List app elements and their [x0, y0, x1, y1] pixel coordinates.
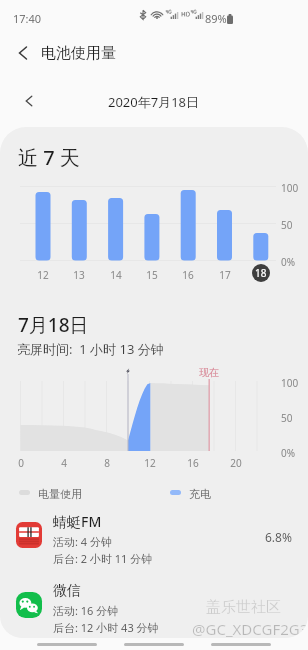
staticText: 12 [37, 268, 49, 282]
staticText: 17 [219, 268, 231, 282]
staticText: 6.8% [265, 529, 292, 545]
staticText: 14 [110, 268, 122, 282]
staticText: 17:40 [13, 11, 42, 26]
staticText: 50 [281, 218, 293, 232]
staticText: 0% [281, 255, 296, 269]
staticText: 100 [281, 376, 299, 390]
staticText: 电池使用量 [41, 44, 116, 63]
staticText: 近 7 天 [18, 144, 80, 171]
staticText: 电量使用 [38, 487, 82, 501]
staticText: 100 [281, 181, 299, 195]
staticText: 0 [18, 456, 24, 470]
staticText: 充电 [189, 487, 211, 501]
staticText: 8 [104, 456, 110, 470]
staticText: 13 [73, 268, 85, 282]
button[interactable]: Recents [37, 643, 97, 646]
staticText: 微信 [53, 582, 81, 600]
staticText: 蜻蜓FM [53, 512, 102, 531]
staticText: 16 [187, 456, 199, 470]
button[interactable]: 蜻蜓FM [0, 511, 308, 571]
staticText: 20 [230, 456, 242, 470]
button[interactable]: 微信 [0, 581, 308, 638]
staticText: 0% [281, 446, 296, 460]
staticText: 亮屏时间: 1 小时 13 分钟 [17, 340, 164, 358]
button[interactable]: Back [5, 35, 41, 71]
staticText: 7月18日 [18, 312, 89, 338]
staticText: 89% [205, 11, 227, 26]
staticText: 现在 [199, 366, 219, 379]
button[interactable]: Previous day [16, 88, 42, 114]
staticText: 后台: 2 小时 11 分钟 [53, 551, 153, 566]
staticText: 活动: 16 分钟 [53, 603, 119, 618]
staticText: 活动: 4 分钟 [53, 534, 112, 549]
staticText: 盖乐世社区 [206, 598, 281, 617]
staticText: 50 [281, 411, 293, 425]
staticText: 后台: 12 小时 43 分钟 [53, 620, 159, 635]
staticText: 12 [144, 456, 156, 470]
staticText: 2020年7月18日 [108, 93, 200, 111]
button[interactable]: Back [211, 643, 271, 646]
staticText: 18 [255, 266, 267, 280]
staticText: 4 [61, 456, 67, 470]
staticText: 16 [182, 268, 194, 282]
staticText: @GC_XDCGF2G3 [192, 619, 308, 638]
staticText: 15 [146, 268, 158, 282]
button[interactable]: Home [124, 643, 184, 646]
